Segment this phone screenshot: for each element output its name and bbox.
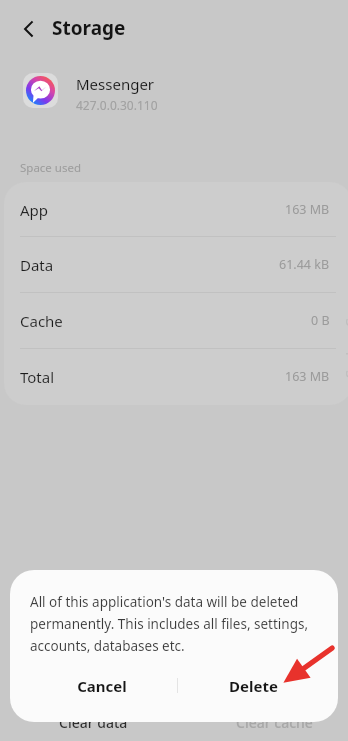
staticText: Delete — [229, 676, 278, 696]
staticText: 0 B — [311, 312, 330, 329]
button[interactable]: Back — [12, 12, 46, 46]
staticText: Clear cache — [236, 713, 313, 732]
button[interactable]: Total — [4, 349, 348, 404]
staticText: Space used — [20, 160, 82, 176]
staticText: All of this application's data will be d… — [30, 593, 322, 655]
staticText: 163 MB — [285, 201, 330, 218]
staticText: Cancel — [77, 676, 127, 696]
button[interactable]: Data — [4, 237, 348, 292]
staticText: Data — [20, 255, 54, 275]
staticText: App — [20, 200, 49, 220]
button[interactable]: Cancel — [28, 667, 176, 705]
button[interactable]: App — [4, 182, 348, 237]
staticText: Storage — [52, 15, 126, 41]
staticText: 163 MB — [285, 368, 330, 385]
staticText: Total — [20, 367, 55, 387]
staticText: Clear data — [59, 713, 128, 732]
staticText: Cache — [20, 311, 63, 331]
button[interactable]: Delete — [179, 667, 327, 705]
staticText: 427.0.0.30.110 — [76, 97, 158, 113]
staticText: 61.44 kB — [279, 256, 330, 273]
button[interactable]: Cache — [4, 293, 348, 348]
staticText: Messenger — [76, 74, 155, 94]
